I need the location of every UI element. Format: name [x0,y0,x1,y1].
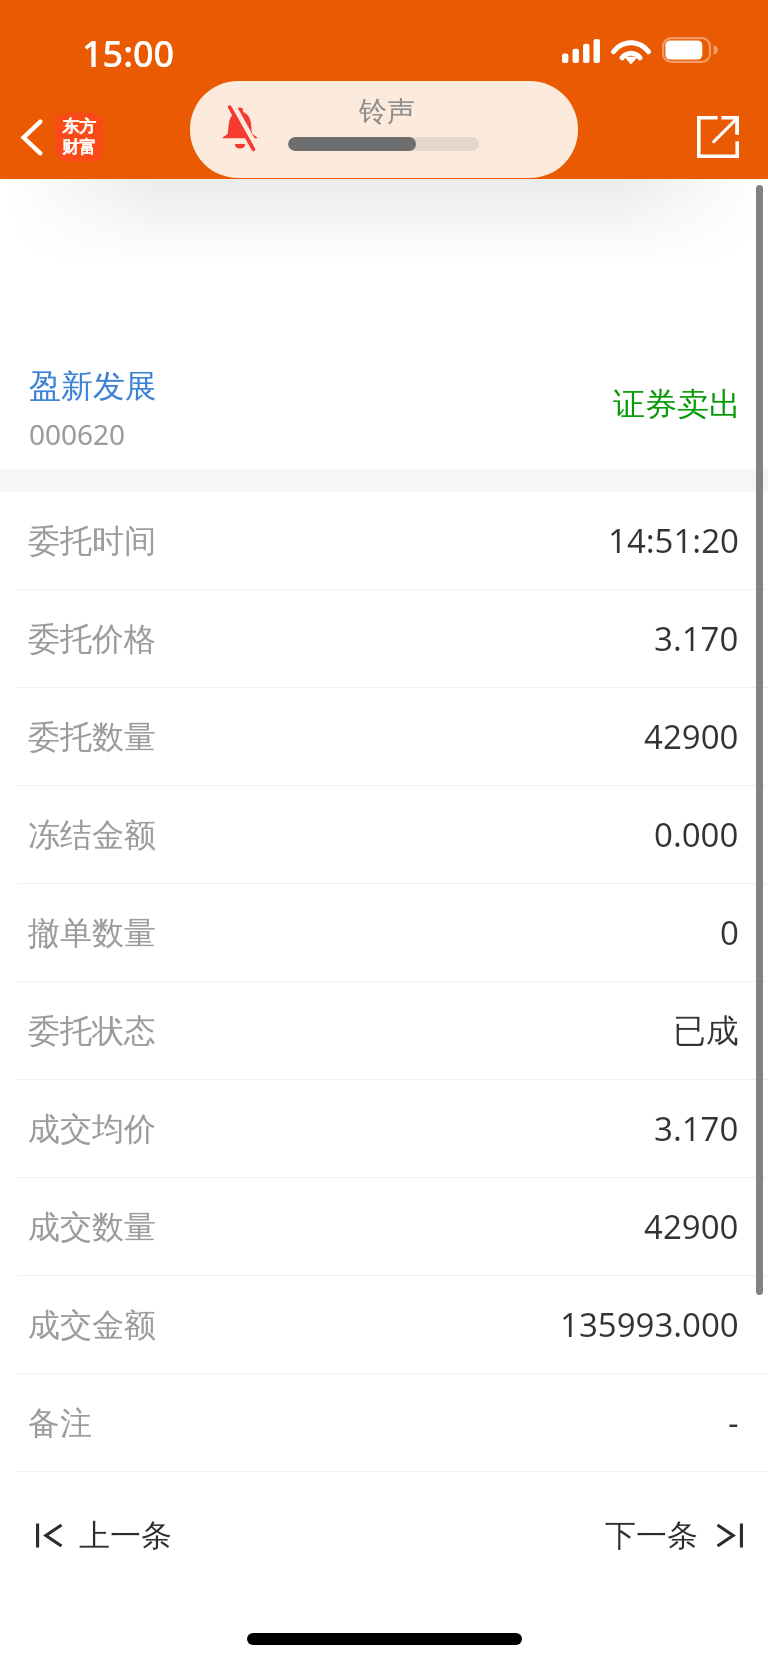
staticText: 下一条 [605,1516,698,1555]
button[interactable]: Previous record [28,1502,180,1569]
staticText: 委托价格 [28,619,156,659]
staticText: 14:51:20 [608,518,739,563]
staticText: 已成 [673,1010,739,1052]
other: Previous record [36,1522,62,1549]
button[interactable]: 撤单数量 [0,884,768,981]
button[interactable]: 成交数量 [0,1178,768,1275]
staticText: 42900 [644,1204,739,1249]
staticText: 3.170 [654,1106,739,1151]
staticText: 委托时间 [28,521,156,561]
staticText: - [728,1400,739,1445]
staticText: 委托状态 [28,1011,156,1051]
staticText: 成交金额 [28,1305,156,1345]
staticText: 铃声 [359,94,415,129]
button[interactable]: 成交金额 [0,1276,768,1373]
button[interactable]: 下一条 [597,1502,751,1569]
staticText: 东方 [62,116,96,137]
button[interactable]: 冻结金额 [0,786,768,883]
staticText: 42900 [644,714,739,759]
button[interactable]: 委托状态 [0,982,768,1079]
staticText: 冻结金额 [28,815,156,855]
staticText: 财富 [62,137,96,158]
button[interactable]: Share [672,90,768,178]
staticText: 上一条 [79,1516,172,1555]
button[interactable]: 委托时间 [0,492,768,589]
staticText: 证券卖出 [613,384,741,424]
button[interactable]: 委托数量 [0,688,768,785]
button[interactable]: 委托价格 [0,590,768,687]
button[interactable]: 备注 [0,1374,768,1471]
staticText: 备注 [28,1403,92,1443]
staticText: 盈新发展 [29,366,157,406]
staticText: 0.000 [654,812,739,857]
button[interactable]: Back [4,98,103,176]
staticText: 成交数量 [28,1207,156,1247]
button[interactable]: 成交均价 [0,1080,768,1177]
other: Back [21,119,43,156]
staticText: 成交均价 [28,1109,156,1149]
other: Next record [717,1522,743,1549]
staticText: 撤单数量 [28,913,156,953]
staticText: 000620 [29,415,126,453]
staticText: 3.170 [654,616,739,661]
staticText: 委托数量 [28,717,156,757]
staticText: 0 [720,910,739,955]
staticText: 135993.000 [560,1302,739,1347]
staticText: 15:00 [82,29,175,78]
